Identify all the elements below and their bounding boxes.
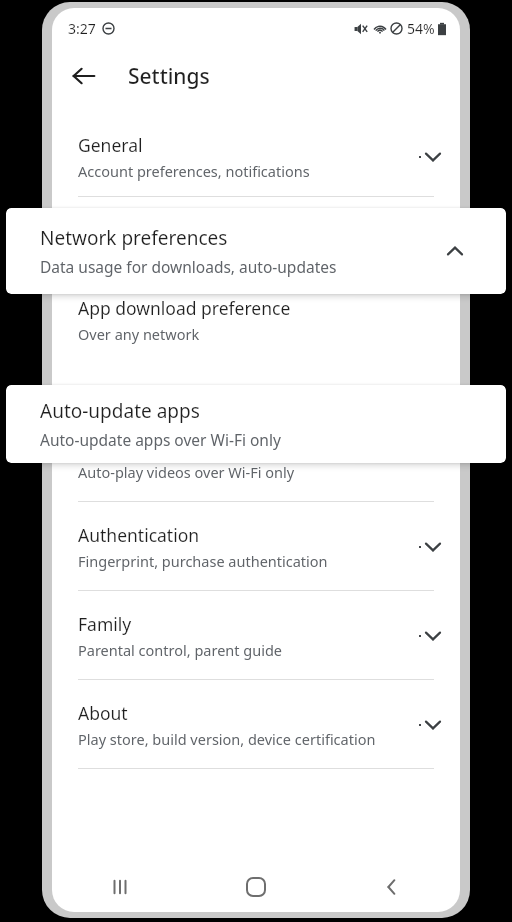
staticText: Auto-update apps over Wi-Fi only <box>40 429 281 450</box>
staticText: Data usage for downloads, auto-updates <box>40 256 337 277</box>
staticText: Settings <box>128 62 210 91</box>
staticText: Auto-play videos over Wi-Fi only <box>78 462 295 482</box>
staticText: Auto-play videos <box>78 434 215 458</box>
button[interactable]: Auto-play videos <box>52 427 460 489</box>
staticText: Family <box>78 612 132 636</box>
button[interactable]: About <box>52 694 460 756</box>
button[interactable]: Home <box>188 862 324 912</box>
button[interactable]: Family <box>52 605 460 667</box>
staticText: Auto-update apps <box>40 398 200 424</box>
button[interactable]: App download preference <box>52 289 460 351</box>
staticText: Play store, build version, device certif… <box>78 729 376 749</box>
button[interactable]: Auto-update apps <box>6 385 506 463</box>
staticText: Over any network <box>78 324 200 344</box>
staticText: Parental control, parent guide <box>78 640 283 660</box>
staticText: Account preferences, notifications <box>78 161 310 181</box>
button[interactable]: General <box>52 126 460 188</box>
staticText: Fingerprint, purchase authentication <box>78 551 328 571</box>
staticText: General <box>78 133 143 157</box>
staticText: About <box>78 701 128 725</box>
button[interactable]: Back <box>62 54 106 98</box>
staticText: Network preferences <box>40 225 228 251</box>
staticText: 54% <box>407 19 435 38</box>
button[interactable]: Authentication <box>52 516 460 578</box>
staticText: 3:27 <box>68 19 96 38</box>
button[interactable]: Recent apps <box>52 862 188 912</box>
button[interactable]: Back <box>324 862 460 912</box>
staticText: Authentication <box>78 523 200 547</box>
button[interactable]: Network preferences <box>6 208 506 294</box>
staticText: App download preference <box>78 296 291 320</box>
